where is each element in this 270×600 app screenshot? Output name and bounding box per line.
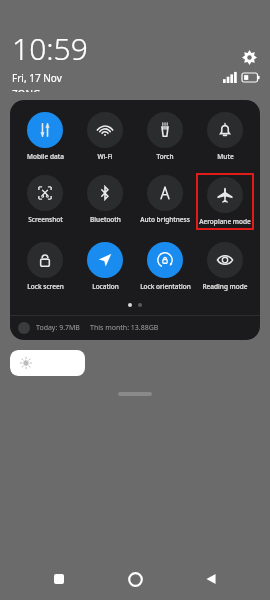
staticText: This month: 13.88GB <box>90 323 159 333</box>
button[interactable]: Mute <box>196 110 254 163</box>
button[interactable]: Recents <box>42 562 76 596</box>
button[interactable]: Bluetooth <box>76 173 134 226</box>
staticText: Torch <box>156 152 174 161</box>
button[interactable]: Screenshot <box>16 173 74 226</box>
staticText: Location <box>92 282 119 291</box>
staticText: ZONG <box>12 87 41 92</box>
staticText: Lock screen <box>27 282 64 291</box>
staticText: Reading mode <box>202 282 248 291</box>
button[interactable]: Lock orientation <box>136 240 194 293</box>
staticText: Fri, 17 Nov <box>12 71 62 85</box>
staticText: Wi-Fi <box>97 152 113 161</box>
button[interactable]: Today: 9.7MB <box>10 316 260 340</box>
button[interactable]: Home <box>118 562 152 596</box>
staticText: Auto brightness <box>140 215 190 224</box>
button[interactable]: Settings <box>238 46 260 68</box>
button[interactable]: Reading mode <box>196 240 254 293</box>
staticText: Screenshot <box>28 215 63 224</box>
button[interactable]: Back <box>194 562 228 596</box>
button[interactable]: Auto brightness <box>136 173 194 226</box>
staticText: Bluetooth <box>90 215 121 224</box>
staticText: Today: 9.7MB <box>36 323 80 333</box>
staticText: Mobile data <box>27 152 64 161</box>
button[interactable]: Mobile data <box>16 110 74 163</box>
button[interactable]: Aeroplane mode <box>198 175 252 228</box>
button[interactable]: Torch <box>136 110 194 163</box>
staticText: Mute <box>217 152 234 161</box>
staticText: Lock orientation <box>140 282 191 291</box>
button[interactable] <box>10 350 260 376</box>
staticText: Aeroplane mode <box>199 217 251 226</box>
button[interactable]: Lock screen <box>16 240 74 293</box>
button[interactable]: Wi-Fi <box>76 110 134 163</box>
button[interactable]: Location <box>76 240 134 293</box>
staticText: 10:59 <box>12 28 88 69</box>
